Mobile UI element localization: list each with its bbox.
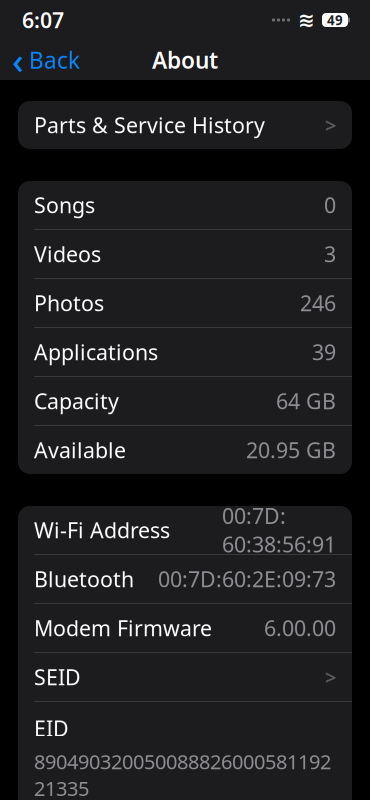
staticText: Videos (34, 240, 101, 268)
staticText: About (152, 45, 218, 75)
staticText: > (325, 664, 336, 690)
staticText: 39 (312, 338, 336, 366)
staticText: SEID (34, 663, 81, 691)
button[interactable]: ‹ (0, 40, 92, 80)
staticText: ≋ (298, 9, 315, 31)
staticText: 3 (324, 240, 336, 268)
staticText: 49 (327, 11, 343, 29)
staticText: 20.95 GB (246, 436, 336, 464)
staticText: 246 (300, 289, 336, 317)
staticText: EID (34, 714, 69, 742)
button[interactable]: Photos (18, 279, 352, 327)
staticText: 64 GB (276, 387, 336, 415)
staticText: > (325, 112, 336, 138)
button[interactable]: Wi-Fi Address (18, 506, 352, 554)
staticText: Parts & Service History (34, 111, 265, 139)
button[interactable]: Available (18, 426, 352, 474)
staticText: Songs (34, 191, 95, 219)
staticText: Available (34, 436, 126, 464)
button[interactable]: Songs (18, 181, 352, 229)
staticText: 6.00.00 (264, 614, 336, 642)
staticText: Capacity (34, 387, 119, 415)
staticText: Photos (34, 289, 104, 317)
staticText: Back (29, 45, 80, 75)
button[interactable]: EID (18, 702, 352, 800)
button[interactable]: Capacity (18, 377, 352, 425)
staticText: 00:7D:60:38:56:91 (222, 502, 336, 558)
button[interactable]: Applications (18, 328, 352, 376)
staticText: Bluetooth (34, 565, 134, 593)
button[interactable]: SEID (18, 653, 352, 701)
staticText: 89049032005008882600058119221335 (34, 748, 331, 800)
staticText: 0 (324, 191, 336, 219)
staticText: 6:07 (22, 6, 64, 34)
button[interactable]: Parts & Service History (18, 101, 352, 149)
staticText: Applications (34, 338, 158, 366)
staticText: Wi-Fi Address (34, 516, 170, 544)
staticText: Modem Firmware (34, 614, 212, 642)
button[interactable]: Bluetooth (18, 555, 352, 603)
staticText: ‹ (12, 36, 24, 84)
button[interactable]: Modem Firmware (18, 604, 352, 652)
button[interactable]: Videos (18, 230, 352, 278)
staticText: 00:7D:60:2E:09:73 (158, 565, 336, 593)
